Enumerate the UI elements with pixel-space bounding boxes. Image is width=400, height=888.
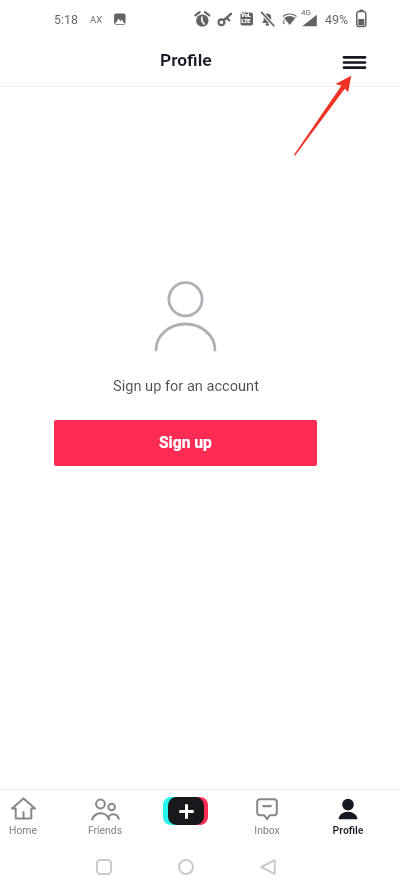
staticText: Profile — [318, 824, 378, 836]
button[interactable]: Menu — [334, 42, 374, 82]
staticText: Inbox — [237, 824, 297, 836]
button[interactable]: Inbox — [237, 790, 297, 836]
button[interactable]: Profile — [318, 790, 378, 836]
button[interactable]: Home — [167, 848, 205, 886]
staticText: Profile — [160, 50, 212, 70]
staticText: 5:18 — [54, 12, 79, 27]
staticText: Friends — [75, 824, 135, 836]
button[interactable]: Recents — [85, 848, 123, 886]
staticText: 4G — [301, 8, 311, 17]
button[interactable]: Sign up — [54, 420, 317, 466]
staticText: AX — [90, 14, 103, 25]
staticText: Home — [0, 824, 53, 836]
button[interactable]: Friends — [75, 790, 135, 836]
button[interactable]: Back — [249, 848, 287, 886]
button[interactable]: Create — [163, 797, 209, 826]
staticText: Sign up for an account — [113, 377, 259, 394]
staticText: Sign up — [159, 434, 212, 452]
staticText: 49% — [325, 12, 349, 27]
button[interactable]: Home — [0, 790, 53, 836]
staticText: VoL LTE — [241, 12, 251, 24]
